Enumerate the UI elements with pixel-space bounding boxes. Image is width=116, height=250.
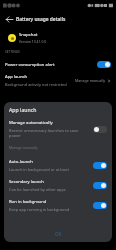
button[interactable]: Auto-launch [4, 159, 112, 172]
staticText: App launch [5, 74, 28, 80]
staticText: Power consumption alert [5, 62, 94, 68]
button[interactable]: Off [93, 126, 107, 133]
button[interactable]: OK [45, 229, 72, 239]
staticText: Battery usage details [16, 16, 66, 23]
staticText: SETTINGS [5, 50, 20, 54]
staticText: Snapchat [19, 32, 38, 38]
button[interactable]: On [93, 162, 107, 169]
staticText: Restrict unnecessary launches to save po… [9, 128, 90, 138]
staticText: Auto-launch [9, 159, 33, 165]
staticText: Run in background [9, 199, 47, 205]
staticText: Version 13.41.0.0 [19, 39, 47, 44]
staticText: Manage manually [9, 145, 38, 150]
staticText: Background activity not restricted [5, 82, 67, 87]
button[interactable]: Power consumption alert [0, 61, 116, 68]
button[interactable]: Secondary launch [4, 179, 112, 192]
staticText: Launch in background or at boot [9, 167, 69, 172]
staticText: Keep app running in background [9, 207, 70, 212]
button[interactable]: Back [3, 13, 15, 25]
button[interactable]: On [97, 61, 111, 68]
button[interactable]: Run in background [4, 199, 112, 212]
button[interactable]: App launch [0, 74, 116, 87]
button[interactable]: Manage automatically [4, 120, 112, 138]
button[interactable]: On [93, 182, 107, 189]
staticText: Secondary launch [9, 179, 44, 185]
staticText: Manage manually [75, 78, 106, 83]
staticText: Can be launched by other apps [9, 187, 66, 192]
staticText: OK [55, 231, 62, 237]
button[interactable]: On [93, 202, 107, 209]
staticText: App launch [9, 106, 37, 113]
staticText: Manage automatically [9, 120, 53, 126]
